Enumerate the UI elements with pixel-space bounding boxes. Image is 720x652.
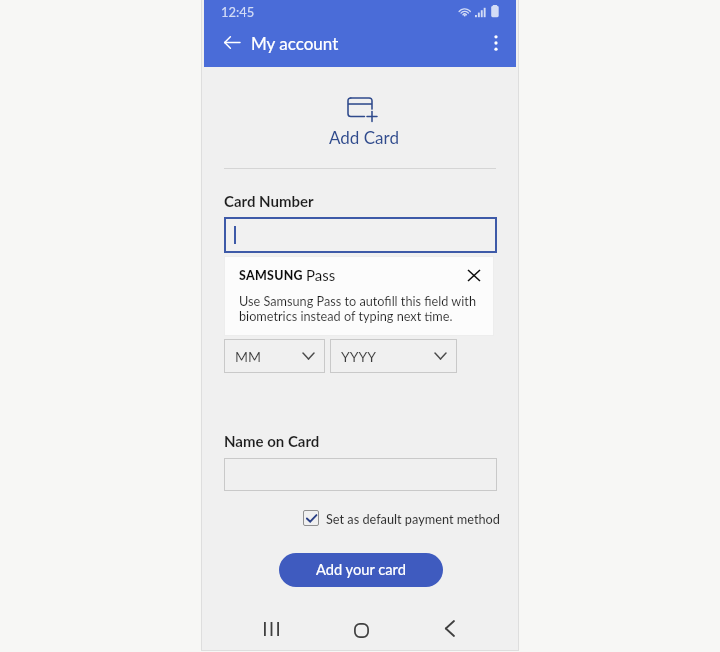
- button[interactable]: More options: [479, 26, 512, 59]
- staticText: Card Number: [224, 192, 314, 210]
- staticText: SAMSUNG: [239, 268, 303, 283]
- staticText: Add your card: [316, 560, 406, 578]
- button[interactable]: Set as default payment method: [303, 507, 500, 529]
- staticText: Name on Card: [224, 432, 320, 450]
- button[interactable]: Back: [426, 605, 473, 652]
- staticText: Add Card: [329, 127, 399, 147]
- staticText: MM: [235, 348, 261, 365]
- button[interactable]: Home: [338, 607, 385, 652]
- staticText: 12:45: [221, 4, 255, 20]
- button[interactable]: [224, 217, 497, 253]
- button[interactable]: Back: [215, 26, 248, 59]
- button[interactable]: MM: [224, 339, 325, 373]
- staticText: YYYY: [341, 348, 376, 365]
- button[interactable]: Recents: [248, 605, 295, 652]
- button[interactable]: YYYY: [330, 339, 457, 373]
- staticText: My account: [251, 33, 339, 53]
- staticText: Use Samsung Pass to autofill this field …: [239, 293, 476, 323]
- button[interactable]: Close: [459, 260, 489, 290]
- button[interactable]: [224, 458, 497, 491]
- staticText: Pass: [306, 266, 336, 284]
- staticText: Set as default payment method: [326, 511, 500, 526]
- button[interactable]: Add your card: [279, 553, 443, 587]
- button[interactable]: Add Card: [302, 90, 418, 150]
